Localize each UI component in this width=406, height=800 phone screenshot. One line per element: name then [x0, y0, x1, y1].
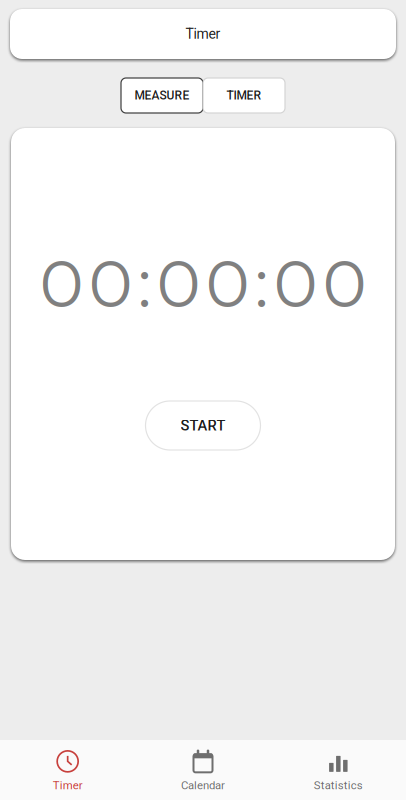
- staticText: TIMER: [226, 88, 261, 103]
- staticText: START: [180, 417, 225, 434]
- button[interactable]: MEASURE: [121, 78, 203, 113]
- staticText: Statistics: [314, 779, 363, 792]
- button[interactable]: START: [145, 401, 260, 450]
- staticText: Timer: [53, 779, 83, 792]
- button[interactable]: Calendar: [135, 740, 271, 800]
- button[interactable]: Statistics: [271, 740, 406, 800]
- button[interactable]: TIMER: [203, 78, 285, 113]
- staticText: MEASURE: [134, 88, 189, 103]
- staticText: Calendar: [181, 779, 225, 792]
- button[interactable]: Timer: [10, 9, 396, 59]
- staticText: 00:00:00: [39, 242, 366, 324]
- staticText: Timer: [185, 26, 220, 42]
- button[interactable]: Timer: [0, 740, 135, 800]
